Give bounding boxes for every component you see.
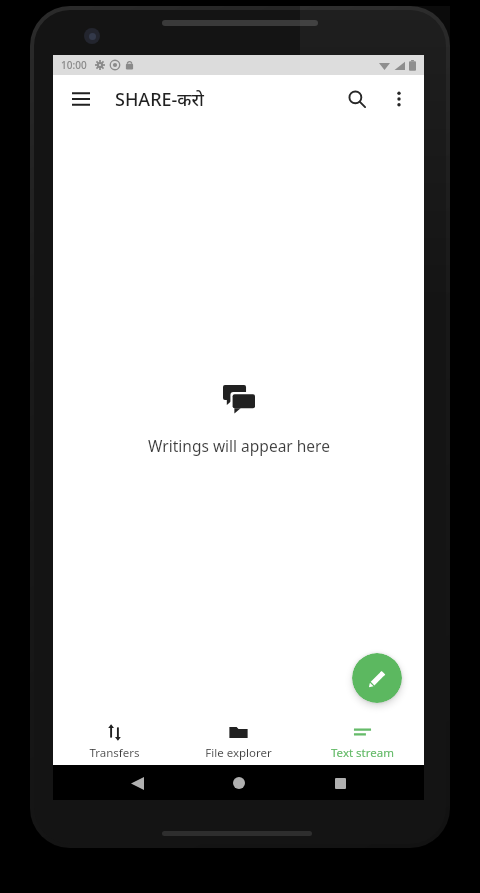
staticText: Transfers <box>89 745 140 761</box>
staticText: SHARE-करो <box>115 87 204 112</box>
staticText: File explorer <box>205 745 272 761</box>
button[interactable]: Search <box>336 78 378 120</box>
button[interactable]: Transfers <box>53 717 176 765</box>
button[interactable]: Home <box>222 766 256 800</box>
button[interactable]: Text stream <box>300 717 424 765</box>
button[interactable]: Compose new writing <box>352 653 402 703</box>
staticText: Writings will appear here <box>148 435 330 456</box>
button[interactable]: Recent apps <box>323 766 357 800</box>
button[interactable]: Open navigation drawer <box>61 79 101 119</box>
button[interactable]: Back <box>120 766 154 800</box>
button[interactable]: More options <box>378 78 420 120</box>
button[interactable]: File explorer <box>176 717 300 765</box>
staticText: 10:00 <box>61 58 87 72</box>
staticText: Text stream <box>331 745 394 761</box>
